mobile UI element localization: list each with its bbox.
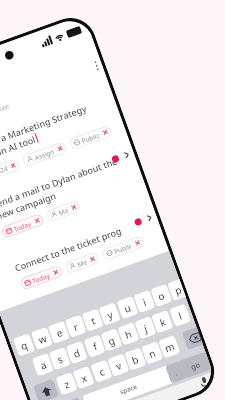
staticText: Me	[57, 206, 70, 217]
staticText: e	[54, 325, 65, 340]
staticText: Create a Marketing Strategy	[0, 101, 89, 154]
staticText: n	[147, 346, 158, 361]
staticText: Assign	[33, 147, 56, 162]
button[interactable]: Today	[19, 265, 63, 291]
staticText: t	[89, 313, 98, 328]
staticText: b	[130, 352, 141, 367]
button[interactable]: h	[117, 322, 140, 346]
button[interactable]: s	[48, 347, 71, 370]
button[interactable]: r	[64, 314, 87, 338]
staticText: Today	[12, 219, 33, 234]
button[interactable]: Me	[45, 200, 82, 222]
staticText: m	[163, 339, 177, 355]
button[interactable]: o	[150, 284, 173, 307]
staticText: i	[141, 295, 148, 309]
button[interactable]: space	[82, 364, 175, 400]
button[interactable]: w	[31, 327, 53, 350]
button[interactable]: d	[65, 341, 88, 364]
staticText: d	[71, 345, 82, 361]
button[interactable]: p	[167, 279, 186, 301]
staticText: Public	[80, 131, 101, 145]
other: Open task	[122, 150, 131, 159]
button[interactable]: e	[48, 320, 70, 344]
staticText: x	[79, 370, 89, 385]
button[interactable]: Me	[64, 251, 100, 274]
button[interactable]: y	[98, 302, 121, 326]
staticText: s	[55, 352, 65, 366]
button[interactable]: Connect to the ticket prog	[0, 207, 166, 304]
button[interactable]: 2024	[0, 158, 21, 182]
button[interactable]: t	[81, 308, 104, 332]
staticText: with an AI tool	[0, 133, 37, 165]
staticText: Me	[76, 257, 89, 269]
button[interactable]: v	[107, 353, 130, 377]
staticText: z	[62, 377, 71, 392]
staticText: f	[91, 339, 99, 354]
button[interactable]: backspace	[181, 327, 203, 350]
staticText: h	[123, 327, 134, 342]
button[interactable]: g	[100, 328, 123, 352]
button[interactable]: Voice input	[197, 375, 213, 390]
button[interactable]: go	[178, 351, 212, 379]
staticText: l	[177, 309, 184, 323]
staticText: p	[173, 282, 184, 297]
button[interactable]: x	[72, 366, 95, 389]
button[interactable]: a	[32, 353, 54, 376]
button[interactable]: Assign	[21, 141, 68, 167]
staticText: k	[158, 314, 168, 330]
staticText: Public	[113, 241, 134, 256]
button[interactable]: Today	[0, 213, 45, 239]
button[interactable]: i	[133, 290, 156, 313]
button[interactable]: Send a mail to Dylan about the	[0, 144, 148, 253]
button[interactable]: Public	[68, 125, 113, 150]
staticText: u	[122, 300, 133, 316]
staticText: a	[38, 357, 49, 373]
button[interactable]: shift	[33, 379, 59, 400]
button[interactable]: n	[141, 341, 163, 365]
button[interactable]: period	[165, 360, 186, 384]
button[interactable]: More options	[86, 56, 105, 77]
button[interactable]: j	[134, 316, 157, 340]
staticText: Send a mail to Dylan about the	[0, 154, 119, 210]
staticText: Assignee	[0, 100, 11, 121]
staticText: v	[114, 358, 124, 373]
button[interactable]: m	[158, 335, 180, 359]
staticText: 2024	[0, 164, 9, 177]
button[interactable]: q	[13, 333, 35, 357]
staticText: o	[156, 288, 167, 304]
button[interactable]: l	[169, 303, 191, 327]
button[interactable]: f	[83, 334, 106, 358]
staticText: go	[189, 359, 202, 372]
staticText: Connect to the ticket prog	[13, 224, 123, 274]
button[interactable]: comma	[63, 397, 85, 400]
staticText: Today	[31, 271, 52, 285]
staticText: new campaign	[0, 189, 57, 222]
staticText: g	[106, 333, 117, 348]
button[interactable]: k	[151, 310, 173, 333]
staticText: w	[36, 331, 49, 347]
staticText: space	[119, 382, 139, 396]
staticText: q	[18, 338, 30, 353]
button[interactable]: z	[55, 372, 78, 395]
button[interactable]: Public	[101, 235, 145, 261]
staticText: c	[97, 364, 106, 379]
staticText: j	[142, 321, 149, 335]
button[interactable]: u	[116, 296, 139, 319]
staticText: y	[105, 307, 115, 322]
button[interactable]: c	[90, 359, 113, 383]
staticText: .	[173, 366, 179, 378]
button[interactable]: Create a Marketing Strategy	[0, 88, 127, 196]
button[interactable]: b	[124, 347, 147, 371]
other: Open task	[145, 213, 154, 222]
staticText: r	[71, 319, 81, 334]
